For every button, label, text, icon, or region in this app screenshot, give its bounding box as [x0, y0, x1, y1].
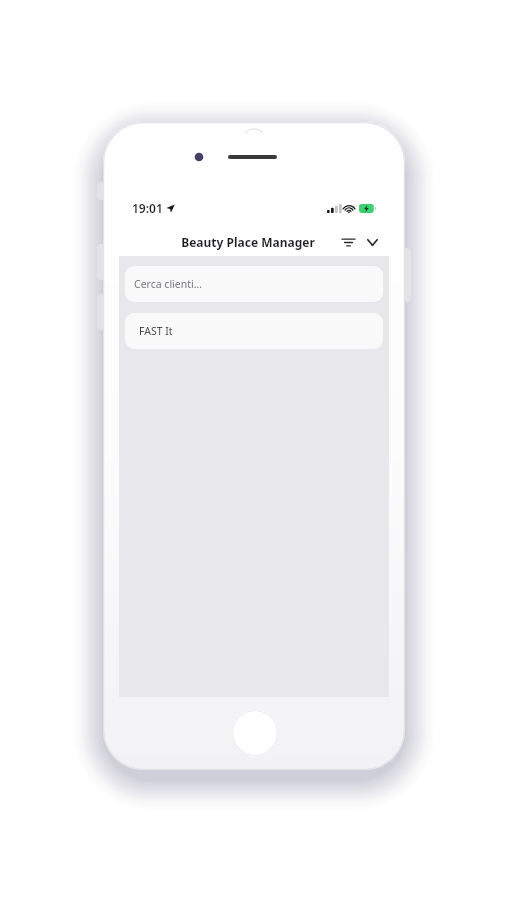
button[interactable]: Home	[232, 710, 278, 756]
staticText: Beauty Place Manager	[159, 234, 337, 250]
staticText: 19:01	[132, 200, 163, 216]
button[interactable]: Cerca clienti...	[125, 266, 383, 302]
button[interactable]: FAST It	[125, 313, 383, 349]
staticText: Cerca clienti...	[134, 277, 203, 291]
button[interactable]: Filter	[337, 231, 359, 253]
button[interactable]: Expand menu	[361, 231, 383, 253]
staticText: FAST It	[139, 324, 173, 338]
